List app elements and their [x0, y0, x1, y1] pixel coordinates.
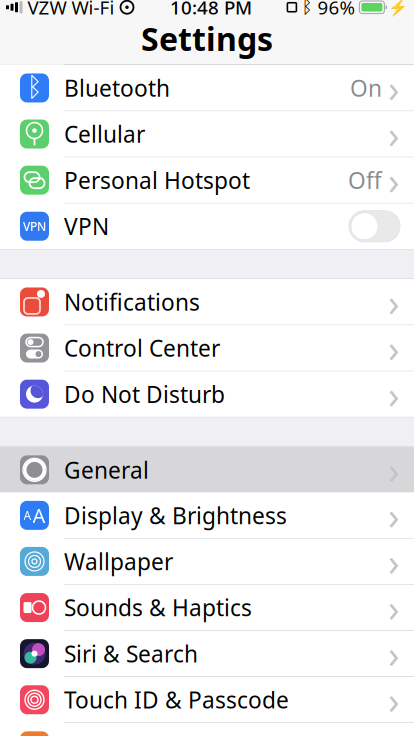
- staticText: Sounds & Haptics: [64, 592, 252, 623]
- staticText: ⚡: [388, 0, 408, 16]
- button[interactable]: Cellular: [0, 111, 414, 157]
- button[interactable]: Sounds & Haptics: [0, 585, 414, 630]
- button[interactable]: Siri & Search: [0, 631, 414, 676]
- staticText: ᛒ: [301, 0, 312, 16]
- staticText: ›: [388, 369, 400, 419]
- button[interactable]: Notifications: [0, 279, 414, 325]
- staticText: A: [23, 507, 31, 523]
- staticText: VPN: [23, 218, 46, 234]
- button[interactable]: Wallpaper: [0, 539, 414, 584]
- staticText: VZW Wi-Fi: [27, 0, 114, 20]
- button[interactable]: Battery: [0, 723, 414, 736]
- button[interactable]: Do Not Disturb: [0, 371, 414, 417]
- staticText: ›: [388, 323, 400, 373]
- staticText: 10:48 PM: [170, 0, 252, 20]
- staticText: Touch ID & Passcode: [64, 685, 289, 715]
- staticText: Personal Hotspot: [64, 165, 250, 195]
- button[interactable]: General: [0, 447, 414, 493]
- button[interactable]: VPN: [0, 203, 414, 249]
- staticText: Settings: [141, 17, 273, 60]
- staticText: On: [350, 73, 382, 103]
- staticText: Display & Brightness: [64, 500, 287, 530]
- staticText: ›: [388, 445, 400, 495]
- staticText: ›: [388, 629, 400, 678]
- staticText: ›: [388, 155, 400, 205]
- staticText: Wallpaper: [64, 546, 173, 576]
- staticText: ›: [388, 721, 400, 736]
- staticText: ›: [388, 491, 400, 540]
- staticText: ›: [388, 63, 400, 113]
- staticText: ›: [388, 277, 400, 327]
- staticText: VPN: [64, 211, 109, 241]
- staticText: 96%: [317, 0, 355, 20]
- button[interactable]: Personal Hotspot: [0, 157, 414, 203]
- button[interactable]: Touch ID & Passcode: [0, 677, 414, 722]
- staticText: Notifications: [64, 287, 200, 317]
- button[interactable]: ᛒ: [0, 65, 414, 111]
- staticText: ᛒ: [26, 75, 42, 101]
- staticText: Siri & Search: [64, 639, 198, 669]
- staticText: ›: [388, 583, 400, 632]
- staticText: ›: [388, 675, 400, 725]
- button[interactable]: Control Center: [0, 325, 414, 371]
- button[interactable]: A: [0, 493, 414, 538]
- staticText: Off: [348, 165, 382, 195]
- staticText: Do Not Disturb: [64, 379, 225, 409]
- staticText: General: [64, 455, 149, 485]
- staticText: Bluetooth: [64, 73, 170, 103]
- staticText: Cellular: [64, 119, 145, 149]
- staticText: ›: [388, 109, 400, 159]
- staticText: Control Center: [64, 333, 220, 363]
- staticText: ›: [388, 537, 400, 586]
- staticText: A: [32, 502, 45, 529]
